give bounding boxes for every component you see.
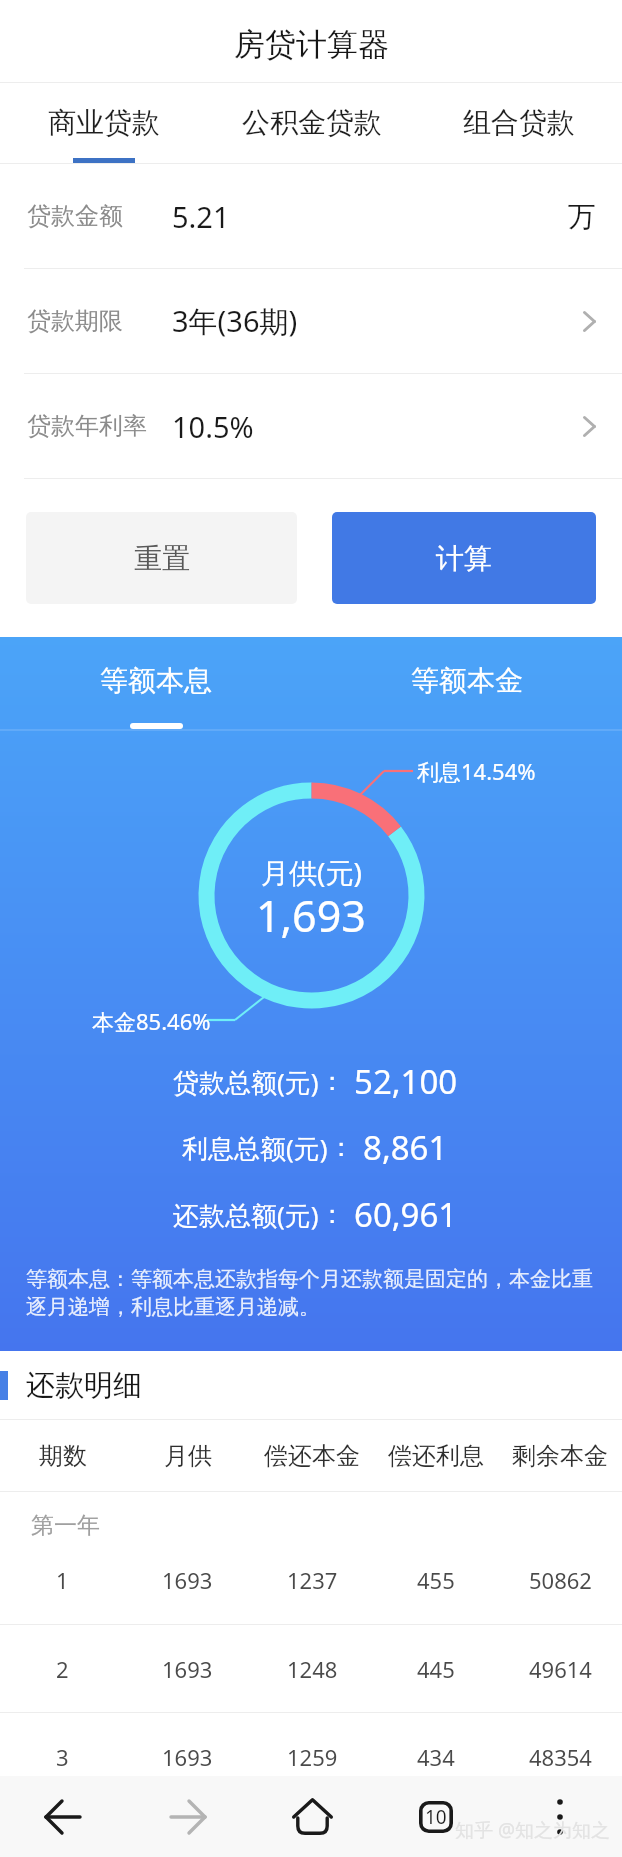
button[interactable]: 商业贷款 [0,83,208,163]
staticText: 10 [425,1804,447,1830]
button[interactable]: 贷款期限 [0,269,622,374]
staticText: 重置 [134,541,190,576]
staticText: 第一年 [31,1511,100,1540]
staticText: 1693 [162,1654,213,1684]
button[interactable]: 重置 [26,512,297,604]
button[interactable]: Tabs [374,1776,498,1857]
staticText: 计算 [436,541,492,576]
staticText: 组合贷款 [463,105,575,140]
button[interactable]: Forward [125,1776,250,1857]
button[interactable]: 贷款年利率 [0,374,622,479]
staticText: 利息总额(元) [182,1130,328,1166]
staticText: 万 [568,199,596,234]
staticText: 3年(36期) [172,301,298,341]
staticText: ： [328,1131,354,1164]
staticText: 2 [56,1654,69,1684]
button[interactable]: Back [0,1776,125,1857]
staticText: 5.21 [172,197,230,236]
staticText: 房贷计算器 [234,25,389,64]
staticText: 利息14.54% [417,756,536,786]
button[interactable]: 公积金贷款 [208,83,415,163]
staticText: 1248 [287,1654,338,1684]
staticText: 剩余本金 [512,1441,608,1471]
button[interactable]: 等额本息 [0,637,311,729]
staticText: 1 [56,1565,69,1595]
staticText: 月供(元) [261,853,362,891]
staticText: 期数 [39,1441,87,1471]
staticText: 48354 [529,1742,592,1772]
staticText: 10.5% [172,407,254,446]
button[interactable]: Menu [498,1776,622,1857]
staticText: 还款总额(元) [173,1197,319,1233]
button[interactable]: 等额本金 [311,637,622,729]
staticText: 贷款年利率 [27,411,147,441]
staticText: 等额本息：等额本息还款指每个月还款额是固定的，本金比重 逐月递增，利息比重逐月递… [26,1266,622,1320]
staticText: 偿还本金 [264,1441,360,1471]
staticText: 455 [417,1565,455,1595]
staticText: 本金85.46% [92,1006,211,1036]
staticText: 公积金贷款 [242,105,382,140]
button[interactable]: 组合贷款 [415,83,622,163]
staticText: 50862 [529,1565,592,1595]
staticText: 1259 [287,1742,338,1772]
staticText: 1237 [287,1565,338,1595]
staticText: 1693 [162,1742,213,1772]
staticText: 445 [417,1654,455,1684]
staticText: 434 [417,1742,455,1772]
staticText: 1693 [162,1565,213,1595]
staticText: 还款明细 [26,1367,142,1404]
staticText: 贷款金额 [27,201,123,231]
staticText: 知乎 @知之为知之 [455,1817,611,1843]
staticText: 贷款期限 [27,306,123,336]
staticText: 52,100 [354,1059,458,1104]
staticText: 偿还利息 [388,1441,484,1471]
staticText: ： [319,1065,345,1098]
button[interactable]: 计算 [332,512,596,604]
staticText: 49614 [529,1654,592,1684]
staticText: 商业贷款 [48,105,160,140]
staticText: 8,861 [363,1125,448,1170]
button[interactable]: 贷款金额 [0,164,622,269]
staticText: 60,961 [354,1192,458,1237]
staticText: 1,693 [256,886,366,945]
staticText: 3 [56,1742,69,1772]
staticText: 等额本息 [100,663,212,698]
staticText: ： [319,1198,345,1231]
staticText: 等额本金 [411,663,523,698]
button[interactable]: Home [250,1776,374,1857]
staticText: 月供 [164,1441,212,1471]
staticText: 贷款总额(元) [173,1064,319,1100]
